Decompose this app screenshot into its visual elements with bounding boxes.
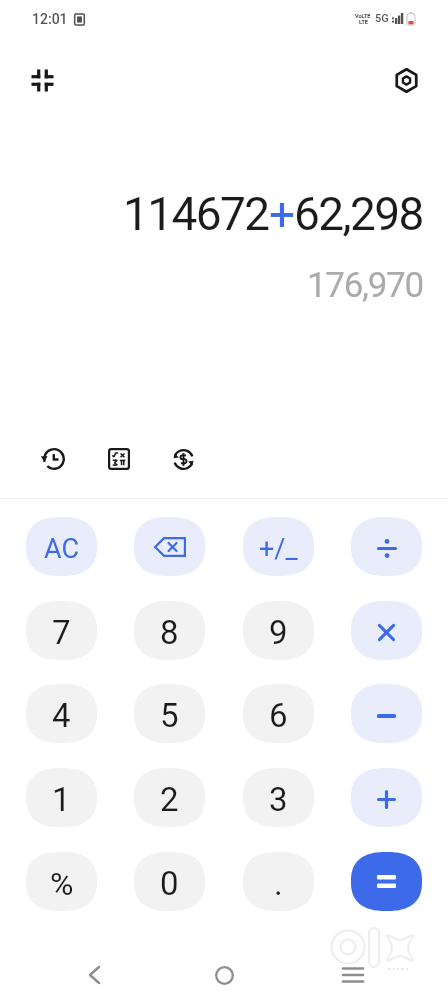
button[interactable]: 2: [134, 768, 205, 827]
staticText: 8: [160, 613, 179, 652]
button[interactable]: .: [243, 852, 314, 911]
button[interactable]: 1: [26, 768, 97, 827]
button[interactable]: History: [32, 437, 76, 481]
button[interactable]: 8: [134, 601, 205, 660]
button[interactable]: 4: [26, 684, 97, 743]
button[interactable]: Equals: [351, 852, 422, 911]
staticText: 5G: [375, 12, 389, 25]
button[interactable]: Back: [72, 953, 116, 997]
button[interactable]: %: [26, 852, 97, 911]
staticText: 12:01: [32, 11, 68, 27]
staticText: LTE: [359, 19, 368, 25]
staticText: VoLTE: [355, 13, 371, 19]
button[interactable]: Subtract: [351, 684, 422, 743]
staticText: 7: [52, 613, 71, 652]
staticText: +/_: [259, 533, 298, 565]
button[interactable]: 5: [134, 684, 205, 743]
staticText: 176,970: [307, 265, 423, 306]
button[interactable]: Recent apps: [331, 953, 375, 997]
staticText: 1: [52, 780, 71, 819]
button[interactable]: Divide: [351, 517, 422, 576]
button[interactable]: Scientific calculator: [97, 437, 141, 481]
button[interactable]: 9: [243, 601, 314, 660]
staticText: 4: [52, 696, 71, 735]
button[interactable]: 3: [243, 768, 314, 827]
staticText: 5: [160, 696, 179, 735]
staticText: 6: [269, 696, 288, 735]
button[interactable]: Multiply: [351, 601, 422, 660]
staticText: AC: [44, 533, 80, 565]
button[interactable]: Home: [202, 953, 246, 997]
button[interactable]: Settings: [384, 58, 428, 102]
button[interactable]: Exit full screen: [20, 58, 64, 102]
staticText: 0: [160, 864, 179, 903]
staticText: 62,298: [294, 187, 423, 241]
button[interactable]: Unit converter: [161, 437, 205, 481]
button[interactable]: +/_: [243, 517, 314, 576]
staticText: 9: [269, 613, 288, 652]
button[interactable]: Delete: [134, 517, 205, 576]
staticText: %: [50, 865, 74, 903]
staticText: 2: [160, 780, 179, 819]
staticText: 114672: [123, 187, 269, 241]
button[interactable]: Add: [351, 768, 422, 827]
button[interactable]: 0: [134, 852, 205, 911]
staticText: .: [274, 864, 283, 903]
button[interactable]: 7: [26, 601, 97, 660]
button[interactable]: AC: [26, 517, 97, 576]
staticText: 3: [269, 780, 288, 819]
button[interactable]: 6: [243, 684, 314, 743]
staticText: +: [269, 187, 294, 241]
